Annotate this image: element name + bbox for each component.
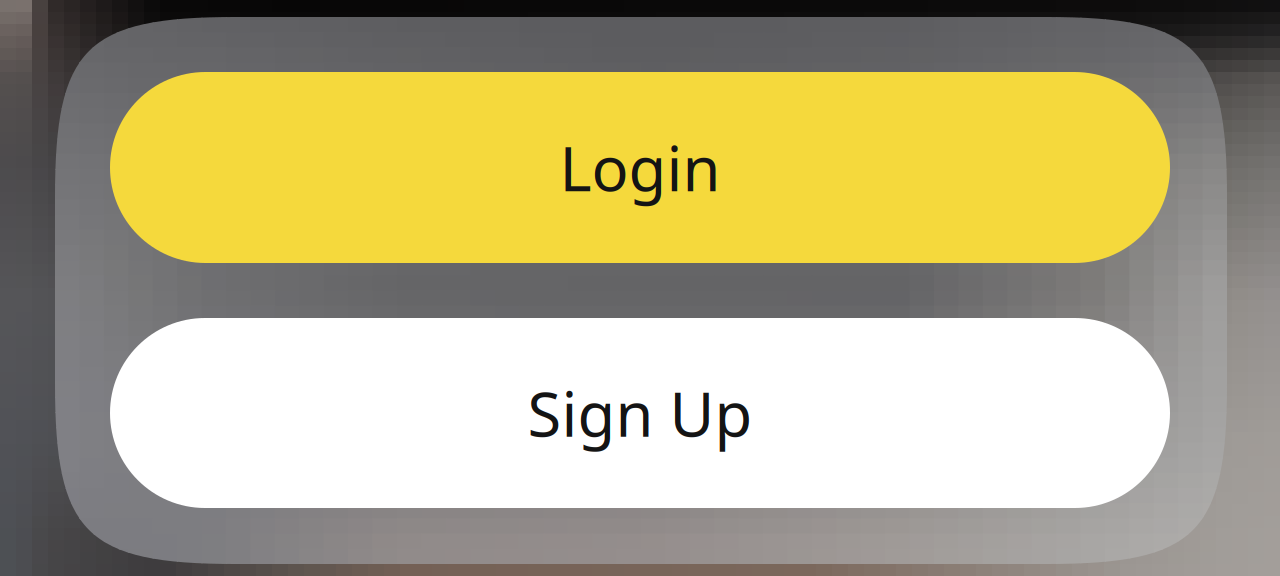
staticText: Sign Up [527, 372, 752, 454]
staticText: Login [559, 127, 720, 208]
button[interactable]: Login [110, 72, 1170, 263]
button[interactable]: Sign Up [110, 318, 1170, 508]
